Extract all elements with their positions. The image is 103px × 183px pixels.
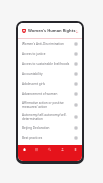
staticText: Access to sustainable livelihoods — [22, 62, 73, 66]
button[interactable]: Autonomy/self-autonomy/self- determinati… — [18, 111, 82, 123]
button[interactable]: Advancement of women — [18, 89, 82, 99]
button[interactable]: Beijing Declaration — [18, 123, 82, 133]
staticText: Accountability — [22, 72, 73, 76]
button[interactable]: person — [56, 145, 69, 161]
button[interactable]: Accountability — [18, 69, 82, 79]
staticText: Women's Human Rights — [28, 28, 76, 33]
button[interactable]: App logo — [22, 29, 26, 33]
staticText: Advancement of women — [22, 92, 73, 96]
button[interactable]: Affirmative action or positive measures/… — [18, 99, 82, 111]
button[interactable]: search — [43, 145, 56, 161]
staticText: Access to justice — [22, 52, 73, 56]
button[interactable]: Women's Anti-Discrimination — [18, 39, 82, 49]
staticText: Autonomy/self-autonomy/self- determinati… — [22, 113, 73, 121]
button[interactable]: Sign in — [76, 29, 78, 33]
button[interactable]: Adolescent girls — [18, 79, 82, 89]
staticText: Affirmative action or positive measures/… — [22, 101, 73, 109]
button[interactable]: book — [69, 145, 82, 161]
staticText: Adolescent girls — [22, 82, 73, 86]
staticText: Best practices — [22, 136, 73, 140]
staticText: Women's Anti-Discrimination — [22, 42, 73, 46]
button[interactable]: list — [30, 145, 43, 161]
staticText: Beijing Declaration — [22, 126, 73, 130]
button[interactable]: Access to sustainable livelihoods — [18, 59, 82, 69]
button[interactable]: home — [18, 145, 30, 161]
button[interactable]: Access to justice — [18, 49, 82, 59]
button[interactable]: Best practices — [18, 133, 82, 143]
